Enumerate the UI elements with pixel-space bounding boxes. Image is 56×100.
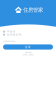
staticText: 住房管家 [23, 7, 43, 13]
staticText: 登录 [25, 45, 31, 49]
staticText: 《用户协议》《隐私政策》 [22, 54, 34, 56]
button[interactable]: 登录 [3, 44, 53, 50]
staticText: 登录即表示同意 [24, 52, 31, 53]
staticText: 短信验证码 [7, 33, 22, 36]
staticText: 未注册手机验证后自动登录 [3, 41, 15, 42]
staticText: 手机号 [7, 30, 16, 33]
